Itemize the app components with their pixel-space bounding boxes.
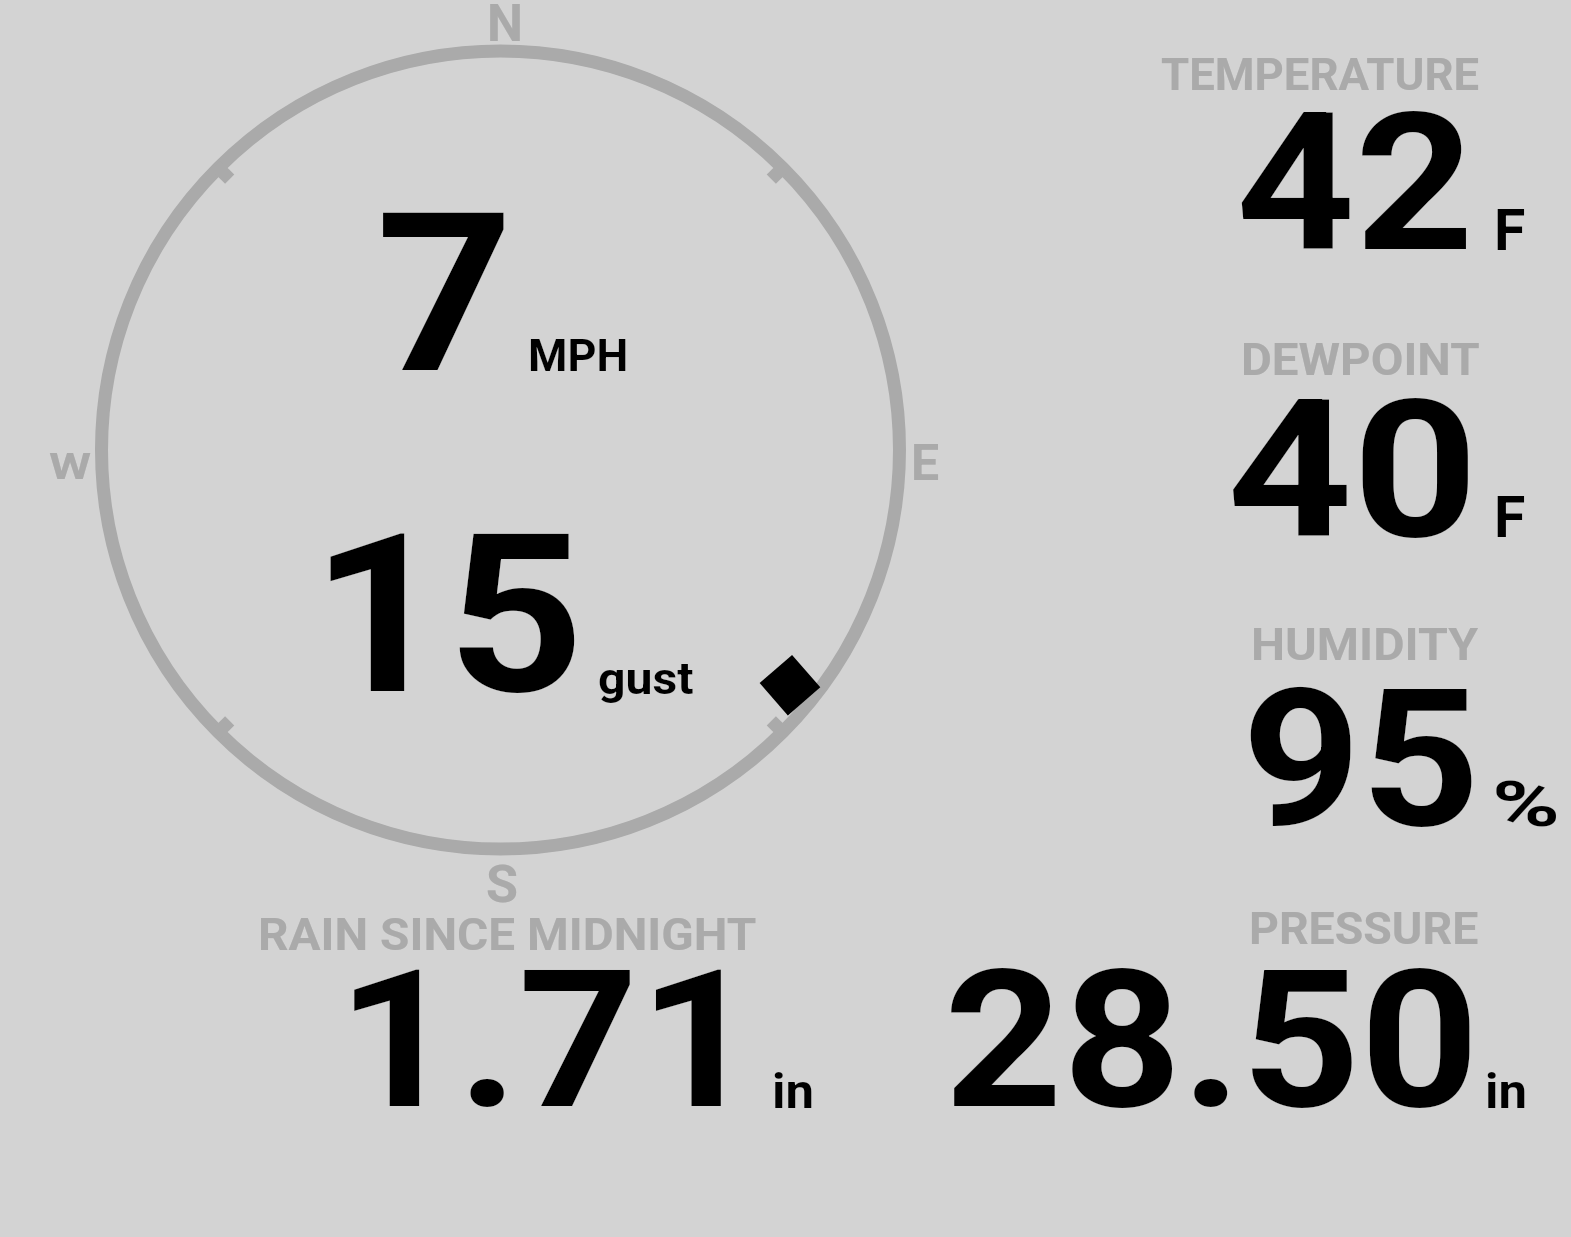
staticText: MPH [528,329,629,382]
button[interactable]: Wind 7 miles per hour, gusting to 15 [95,46,905,856]
staticText: F [1494,197,1526,264]
button[interactable]: Humidity 95 percent [1110,610,1571,840]
staticText: PRESSURE [1249,902,1479,955]
staticText: 7 [376,166,514,424]
staticText: RAIN SINCE MIDNIGHT [258,908,757,961]
staticText: 1.71 [337,928,760,1153]
staticText: HUMIDITY [1251,618,1478,671]
staticText: 42 [1236,71,1475,296]
staticText: W [49,445,92,488]
staticText: 28.50 [944,928,1480,1153]
staticText: TEMPERATURE [1161,48,1479,101]
staticText: 15 [311,487,585,745]
button[interactable]: Pressure 28.50 inches [900,895,1571,1120]
staticText: % [1492,768,1561,842]
staticText: N [487,0,523,54]
button[interactable]: Temperature 42 degrees Fahrenheit [1110,40,1571,270]
staticText: 40 [1227,358,1479,583]
staticText: DEWPOINT [1241,333,1480,386]
staticText: F [1494,484,1526,551]
staticText: in [1485,1063,1527,1119]
staticText: 95 [1242,647,1481,872]
button[interactable]: Rain since midnight 1.71 inches [240,900,840,1120]
staticText: gust [598,652,694,705]
staticText: S [486,854,519,915]
staticText: in [772,1063,814,1119]
button[interactable]: Dew point 40 degrees Fahrenheit [1110,325,1571,555]
staticText: E [911,434,940,493]
